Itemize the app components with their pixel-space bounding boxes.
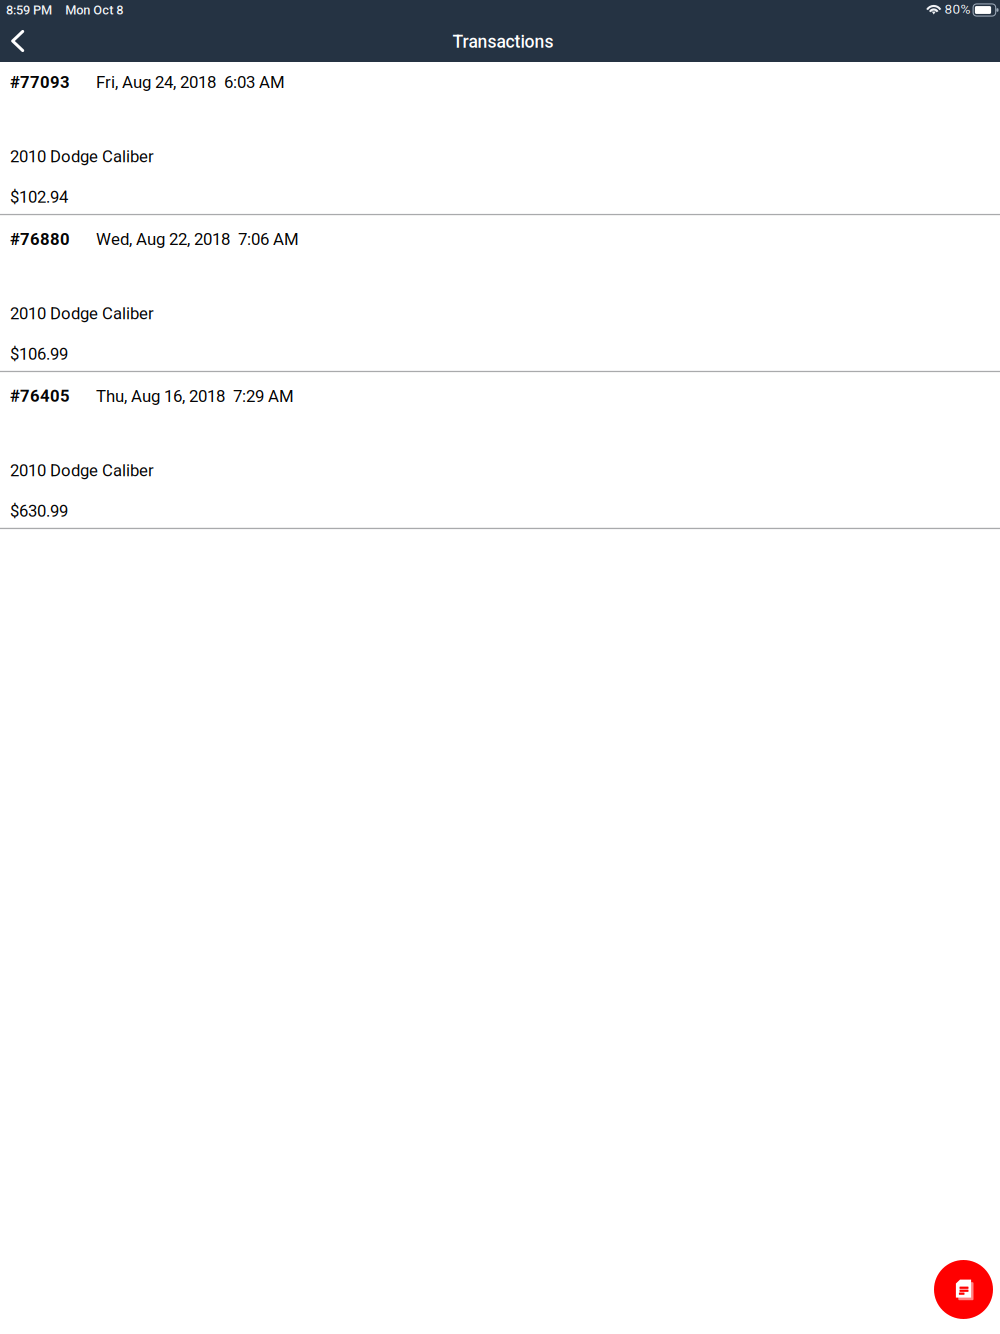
button[interactable]: #77093 [0,59,1000,216]
staticText: Thu, Aug 16, 2018 7:29 AM [96,386,294,406]
staticText: 80% [944,1,970,17]
button[interactable]: Back [0,20,38,62]
staticText: 2010 Dodge Caliber [10,147,154,166]
staticText: Transactions [452,31,553,52]
staticText: 2010 Dodge Caliber [10,461,154,480]
staticText: #76405 [10,386,70,406]
staticText: $102.94 [10,187,68,207]
staticText: Mon Oct 8 [65,2,123,17]
button[interactable]: New transaction [934,1260,993,1319]
staticText: #77093 [10,72,70,92]
staticText: $106.99 [10,344,68,364]
staticText: Fri, Aug 24, 2018 6:03 AM [96,72,285,92]
staticText: 2010 Dodge Caliber [10,304,154,323]
staticText: $630.99 [10,501,68,521]
staticText: 8:59 PM [6,2,52,17]
button[interactable]: #76405 [0,373,1000,530]
button[interactable]: #76880 [0,216,1000,373]
staticText: #76880 [10,229,70,249]
staticText: Wed, Aug 22, 2018 7:06 AM [96,229,299,249]
